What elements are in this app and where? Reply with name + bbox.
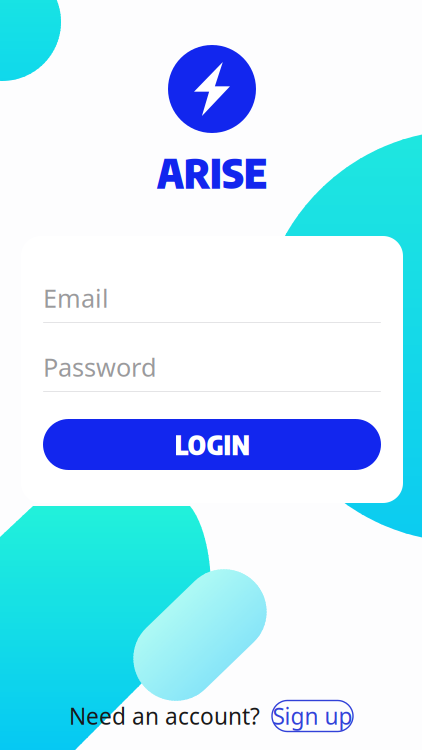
staticText: LOGIN <box>174 428 249 461</box>
button[interactable]: Sign up <box>272 700 353 731</box>
staticText: Sign up <box>272 701 352 731</box>
button[interactable]: LOGIN <box>43 419 381 470</box>
staticText: ARISE <box>157 146 267 198</box>
staticText: Email <box>43 281 109 315</box>
staticText: Password <box>43 350 157 384</box>
staticText: Need an account? <box>69 701 260 731</box>
